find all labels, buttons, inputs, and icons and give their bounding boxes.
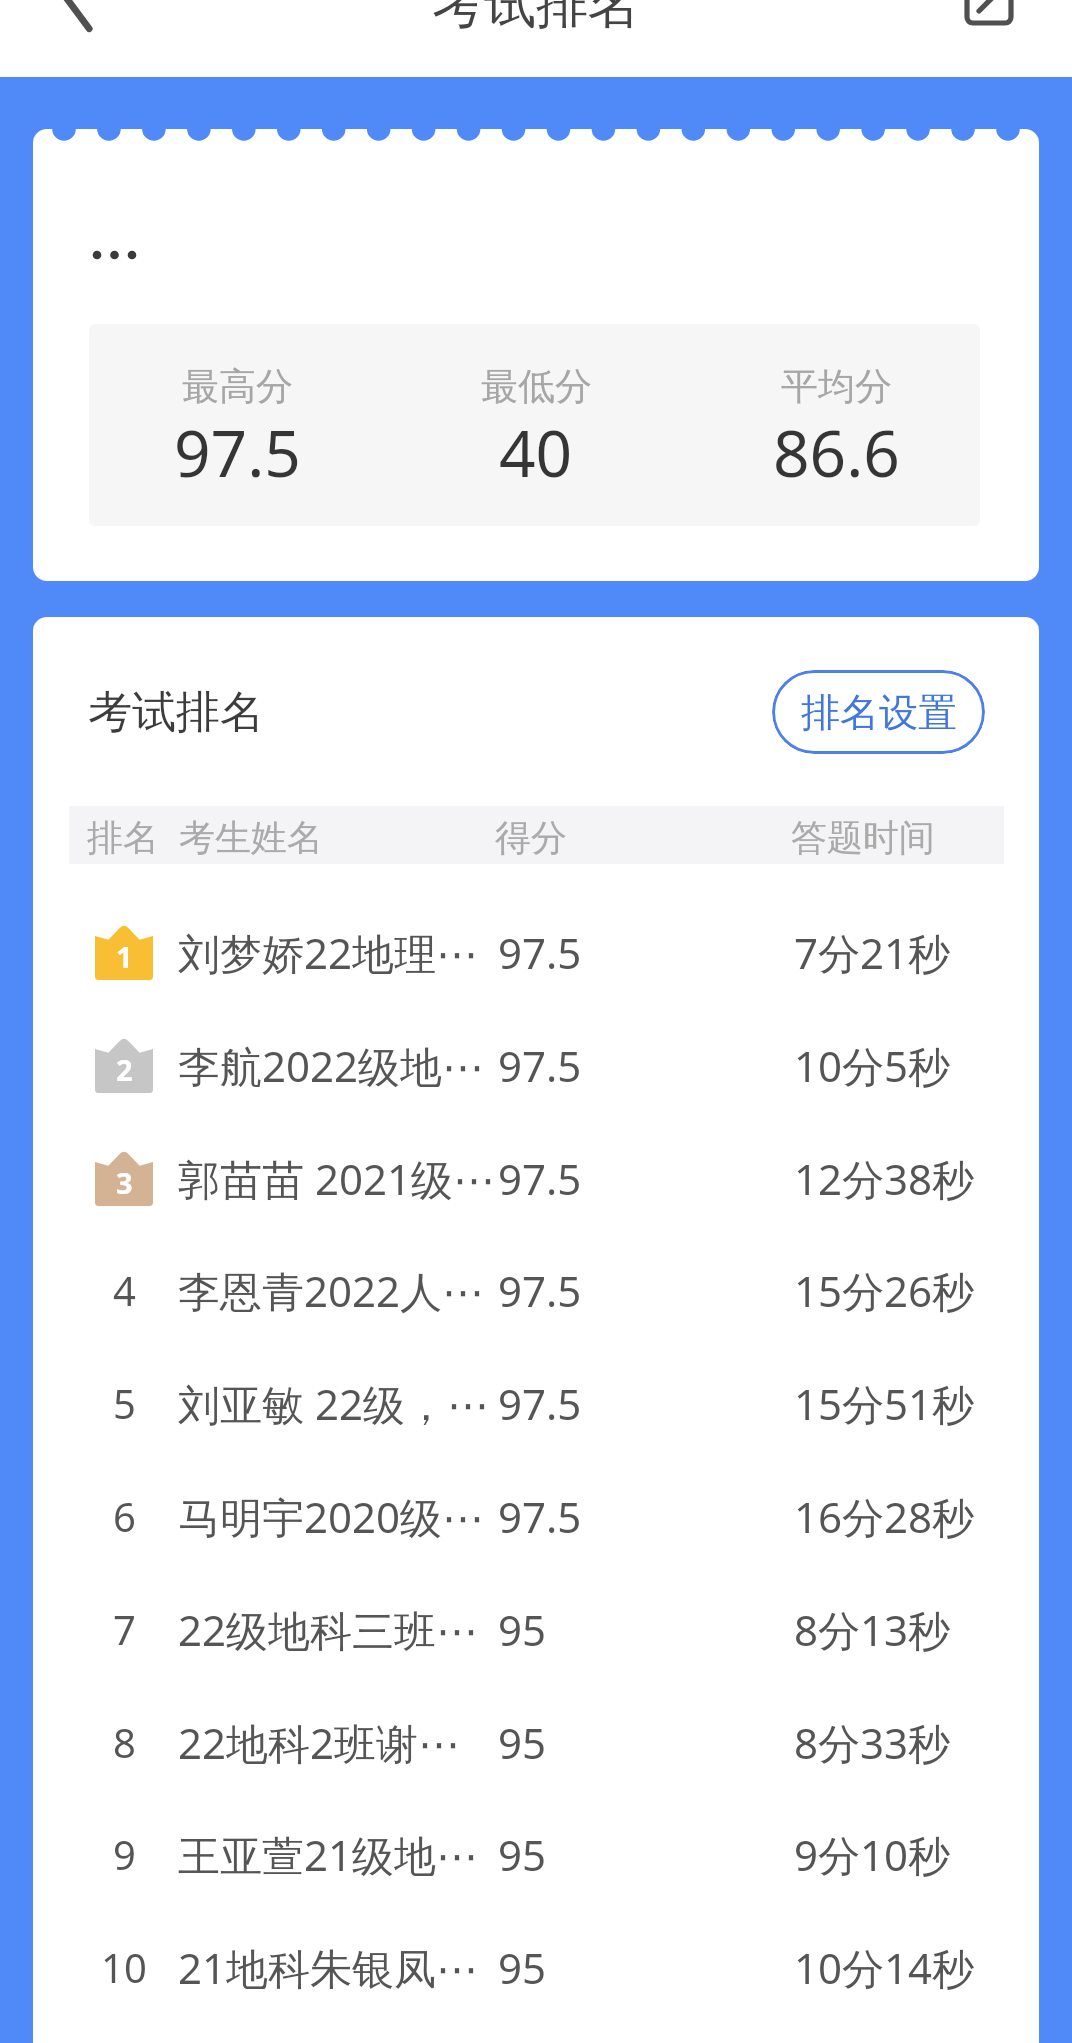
staticText: 15分26秒 (794, 1262, 975, 1319)
staticText: 最高分 (182, 363, 293, 410)
staticText: 10分5秒 (794, 1037, 951, 1094)
staticText: 答题时间 (791, 815, 935, 860)
staticText: 最低分 (481, 363, 592, 410)
staticText: 7分21秒 (794, 924, 951, 981)
staticText: 22地科2班谢⋯ (178, 1714, 461, 1771)
staticText: 97.5 (498, 1375, 582, 1432)
staticText: 86.6 (773, 409, 900, 496)
button[interactable]: 2 (33, 1009, 1039, 1121)
button[interactable]: 1 (33, 896, 1039, 1008)
button[interactable]: 排名设置 (772, 670, 985, 754)
staticText: 95 (498, 1714, 547, 1771)
staticText: 1 (116, 937, 133, 976)
staticText: 10分14秒 (794, 1939, 975, 1996)
staticText: 2 (116, 1050, 133, 1089)
staticText: 95 (498, 1939, 547, 1996)
staticText: 6 (113, 1489, 136, 1543)
staticText: 97.5 (498, 1150, 582, 1207)
staticText: 97.5 (498, 1262, 582, 1319)
staticText: 刘梦娇22地理⋯ (178, 924, 479, 981)
staticText: 95 (498, 1826, 547, 1883)
button[interactable]: 8 (33, 1686, 1039, 1798)
staticText: 8 (113, 1715, 136, 1769)
staticText: 97.5 (174, 409, 301, 496)
button[interactable]: 3 (33, 1122, 1039, 1234)
staticText: 考试排名 (88, 685, 264, 740)
staticText: 得分 (495, 815, 567, 860)
staticText: 考试排名 (432, 0, 640, 38)
staticText: 97.5 (498, 1488, 582, 1545)
staticText: 刘亚敏 22级，⋯ (178, 1375, 489, 1432)
staticText: 9 (113, 1827, 136, 1881)
staticText: 10 (101, 1940, 147, 1994)
staticText: 97.5 (498, 924, 582, 981)
button[interactable]: 6 (33, 1460, 1039, 1572)
staticText: 8分13秒 (794, 1601, 951, 1658)
button[interactable]: 4 (33, 1234, 1039, 1346)
button[interactable]: 5 (33, 1347, 1039, 1459)
button[interactable]: Edit (951, 0, 1027, 39)
staticText: 5 (113, 1376, 136, 1430)
staticText: 排名设置 (801, 688, 957, 737)
staticText: 王亚萱21级地⋯ (178, 1826, 479, 1883)
staticText: 马明宇2020级⋯ (178, 1488, 485, 1545)
staticText: 3 (116, 1163, 133, 1202)
button[interactable]: 7 (33, 1573, 1039, 1685)
staticText: 16分28秒 (794, 1488, 975, 1545)
staticText: 李恩青2022人⋯ (178, 1262, 485, 1319)
staticText: 7 (113, 1602, 136, 1656)
staticText: 12分38秒 (794, 1150, 975, 1207)
staticText: 21地科朱银凤⋯ (178, 1939, 479, 1996)
staticText: 15分51秒 (794, 1375, 975, 1432)
staticText: 平均分 (781, 363, 892, 410)
button[interactable]: 9 (33, 1798, 1039, 1910)
button[interactable]: Back (33, 0, 109, 34)
staticText: 考生姓名 (179, 815, 323, 860)
staticText: 排名 (87, 815, 159, 860)
staticText: 22级地科三班⋯ (178, 1601, 479, 1658)
staticText: 4 (113, 1263, 136, 1317)
button[interactable]: 10 (33, 1911, 1039, 2023)
button[interactable]: More options (69, 225, 189, 285)
staticText: 97.5 (498, 1037, 582, 1094)
staticText: 9分10秒 (794, 1826, 951, 1883)
staticText: 8分33秒 (794, 1714, 951, 1771)
staticText: 李航2022级地⋯ (178, 1037, 485, 1094)
staticText: 95 (498, 1601, 547, 1658)
staticText: 40 (499, 409, 573, 496)
staticText: 郭苗苗 2021级⋯ (178, 1150, 496, 1207)
